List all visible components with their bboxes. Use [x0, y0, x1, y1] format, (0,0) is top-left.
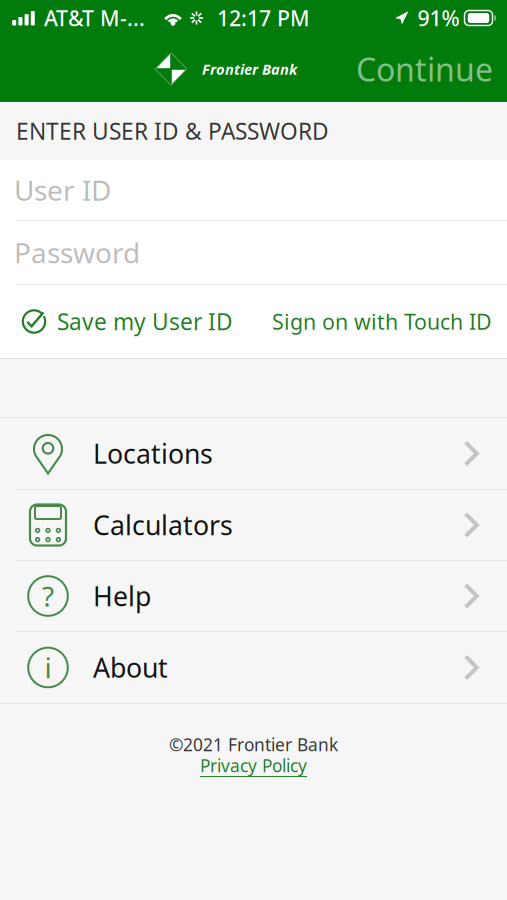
- button[interactable]: i: [0, 632, 507, 703]
- staticText: 12:17 PM: [217, 4, 310, 32]
- staticText: Frontier Bank: [202, 59, 297, 79]
- staticText: Save my User ID: [57, 306, 233, 336]
- button[interactable]: Privacy Policy: [200, 754, 307, 777]
- staticText: i: [44, 649, 51, 686]
- button[interactable]: Calculators: [0, 490, 507, 560]
- staticText: ?: [42, 577, 54, 615]
- button[interactable]: Continue: [342, 39, 507, 99]
- button[interactable]: Locations: [0, 418, 507, 489]
- staticText: Sign on with Touch ID: [272, 307, 492, 336]
- staticText: ©2021 Frontier Bank: [169, 733, 338, 756]
- staticText: Password: [14, 234, 140, 271]
- staticText: Help: [93, 578, 151, 614]
- staticText: ENTER USER ID & PASSWORD: [16, 116, 329, 146]
- staticText: About: [93, 650, 168, 685]
- staticText: 91%: [417, 4, 459, 32]
- staticText: Locations: [93, 436, 213, 471]
- staticText: Privacy Policy: [200, 754, 307, 777]
- staticText: User ID: [14, 171, 111, 209]
- staticText: Continue: [356, 48, 493, 90]
- staticText: AT&T M-...: [44, 4, 145, 32]
- button[interactable]: Save my User ID: [21, 306, 233, 336]
- button[interactable]: ?: [0, 561, 507, 631]
- button[interactable]: Sign on with Touch ID: [272, 307, 492, 336]
- staticText: Calculators: [93, 507, 233, 543]
